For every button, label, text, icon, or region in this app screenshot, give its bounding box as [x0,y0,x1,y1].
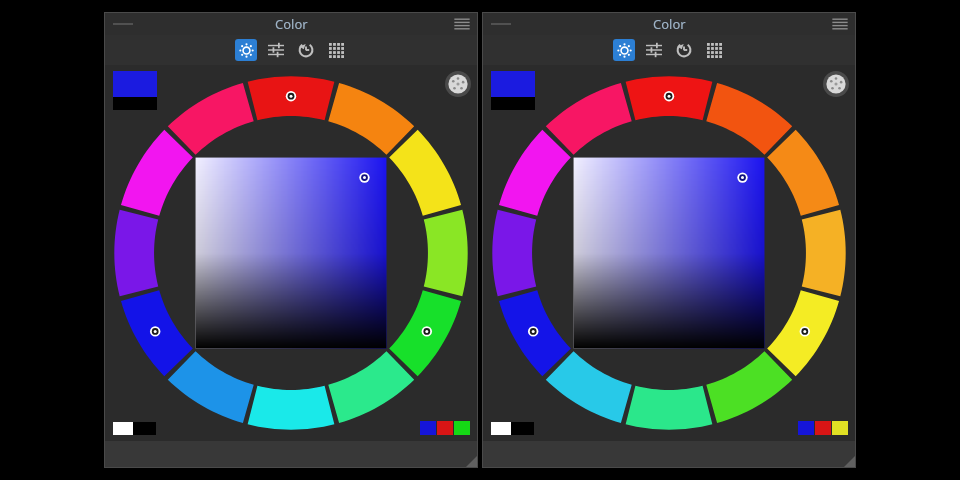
button[interactable]: Black and white [113,422,156,435]
button[interactable]: Menu [453,15,471,33]
button[interactable]: Saved colors [798,421,849,435]
button[interactable]: History [673,39,695,61]
button[interactable]: Sliders [265,39,287,61]
button[interactable]: Current color [491,71,535,110]
button[interactable] [483,65,855,441]
button[interactable]: Color wheel [613,39,635,61]
button[interactable]: Palette grid [703,39,725,61]
button[interactable] [105,65,477,441]
button[interactable]: Color harmony [823,71,849,97]
staticText: Color [653,15,686,33]
button[interactable]: Collapse [113,16,133,32]
button[interactable]: Palette grid [325,39,347,61]
button[interactable]: Color harmony [445,71,471,97]
button[interactable]: Current color [113,71,157,110]
button[interactable]: Menu [831,15,849,33]
button[interactable]: History [295,39,317,61]
button[interactable]: Collapse [491,16,511,32]
staticText: Color [275,15,308,33]
button[interactable]: Saved colors [420,421,471,435]
button[interactable]: Color wheel [235,39,257,61]
button[interactable]: Sliders [643,39,665,61]
button[interactable]: Black and white [491,422,534,435]
